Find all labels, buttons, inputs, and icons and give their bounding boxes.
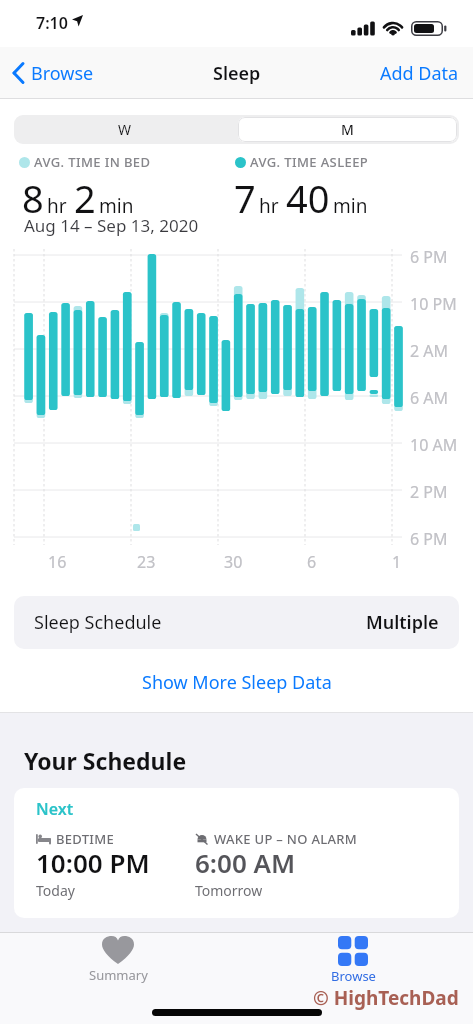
staticText: Your Schedule [24, 745, 187, 776]
staticText: 10:00 PM [36, 845, 150, 880]
staticText: Sleep Schedule [34, 610, 162, 635]
staticText: Add Data [380, 61, 459, 86]
staticText: Browse [31, 61, 94, 86]
staticText: 6 AM [410, 387, 449, 409]
staticText: 40 [286, 172, 330, 224]
staticText: © HighTechDad [313, 985, 459, 1011]
button[interactable]: Browse [12, 47, 94, 99]
staticText: 7:10 [36, 12, 68, 34]
staticText: Summary [89, 966, 148, 984]
button[interactable]: Next [14, 788, 459, 918]
staticText: AVG. TIME ASLEEP [250, 153, 369, 171]
staticText: 1 [392, 551, 402, 573]
staticText: 10 PM [410, 293, 457, 315]
button[interactable]: W [14, 115, 236, 144]
staticText: Aug 14 – Sep 13, 2020 [24, 214, 199, 237]
staticText: Multiple [366, 610, 439, 635]
staticText: 10 AM [410, 434, 458, 456]
staticText: hr [259, 193, 279, 219]
button[interactable]: Sleep Schedule [14, 596, 459, 649]
button[interactable]: Browse [313, 936, 393, 992]
staticText: BEDTIME [56, 830, 115, 848]
staticText: min [333, 193, 368, 219]
staticText: 7 [234, 172, 256, 224]
button[interactable]: Show More Sleep Data [0, 670, 473, 695]
staticText: 30 [224, 551, 243, 573]
staticText: Show More Sleep Data [142, 670, 332, 695]
button[interactable] [238, 117, 457, 142]
staticText: 2 AM [410, 340, 449, 362]
staticText: 6:00 AM [195, 845, 296, 880]
staticText: AVG. TIME IN BED [34, 153, 151, 171]
staticText: 6 [307, 551, 317, 573]
staticText: 2 [74, 172, 96, 224]
button[interactable]: Summary [78, 936, 158, 992]
staticText: W [118, 120, 132, 139]
staticText: Next [36, 798, 74, 820]
button[interactable]: Add Data [380, 61, 459, 86]
staticText: 6 PM [410, 528, 448, 550]
staticText: min [99, 193, 134, 219]
staticText: 8 [22, 172, 44, 224]
staticText: 16 [48, 551, 67, 573]
staticText: 23 [137, 551, 156, 573]
staticText: Tomorrow [195, 881, 263, 900]
staticText: 2 PM [410, 481, 448, 503]
staticText: M [341, 120, 354, 139]
staticText: Browse [331, 967, 376, 985]
staticText: hr [47, 193, 67, 219]
staticText: 6 PM [410, 246, 448, 268]
staticText: WAKE UP – NO ALARM [214, 830, 358, 848]
staticText: Today [36, 881, 75, 900]
staticText: Sleep [213, 61, 261, 86]
